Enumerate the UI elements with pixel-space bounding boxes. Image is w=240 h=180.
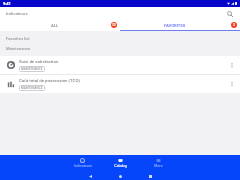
button[interactable]: More options (224, 56, 240, 74)
staticText: Indicateurs (74, 164, 92, 168)
staticText: Catalog (114, 164, 127, 168)
button[interactable]: Home (116, 172, 124, 180)
staticText: MAINTENANCE (21, 86, 43, 90)
button[interactable]: ALL (0, 19, 120, 31)
staticText: Maintenance (6, 46, 31, 51)
staticText: FAVORITES (164, 23, 186, 28)
button[interactable]: Search (225, 9, 234, 18)
staticText: Favorites list (6, 36, 30, 41)
button[interactable]: FAVORITES (120, 19, 240, 31)
button[interactable]: Recent apps (146, 172, 154, 180)
staticText: Coût total de possession (TCO) (19, 78, 80, 83)
button[interactable]: Coût total de possession (TCO) (0, 75, 240, 93)
button[interactable]: Back (86, 172, 94, 180)
button[interactable]: Catalog (108, 158, 133, 168)
staticText: ALL (51, 23, 59, 28)
staticText: More (154, 164, 163, 168)
button[interactable]: More options (224, 75, 240, 93)
staticText: Suivi de satisfaction (19, 59, 59, 64)
staticText: 12 (112, 23, 116, 27)
staticText: Indicateurs (6, 11, 28, 16)
button[interactable]: Indicateurs (70, 158, 95, 168)
staticText: MAINTENANCE (21, 67, 43, 71)
button[interactable]: Suivi de satisfaction (0, 56, 240, 74)
button[interactable]: More (146, 158, 171, 168)
staticText: 3 (233, 23, 235, 27)
staticText: 9:41 (3, 1, 11, 6)
